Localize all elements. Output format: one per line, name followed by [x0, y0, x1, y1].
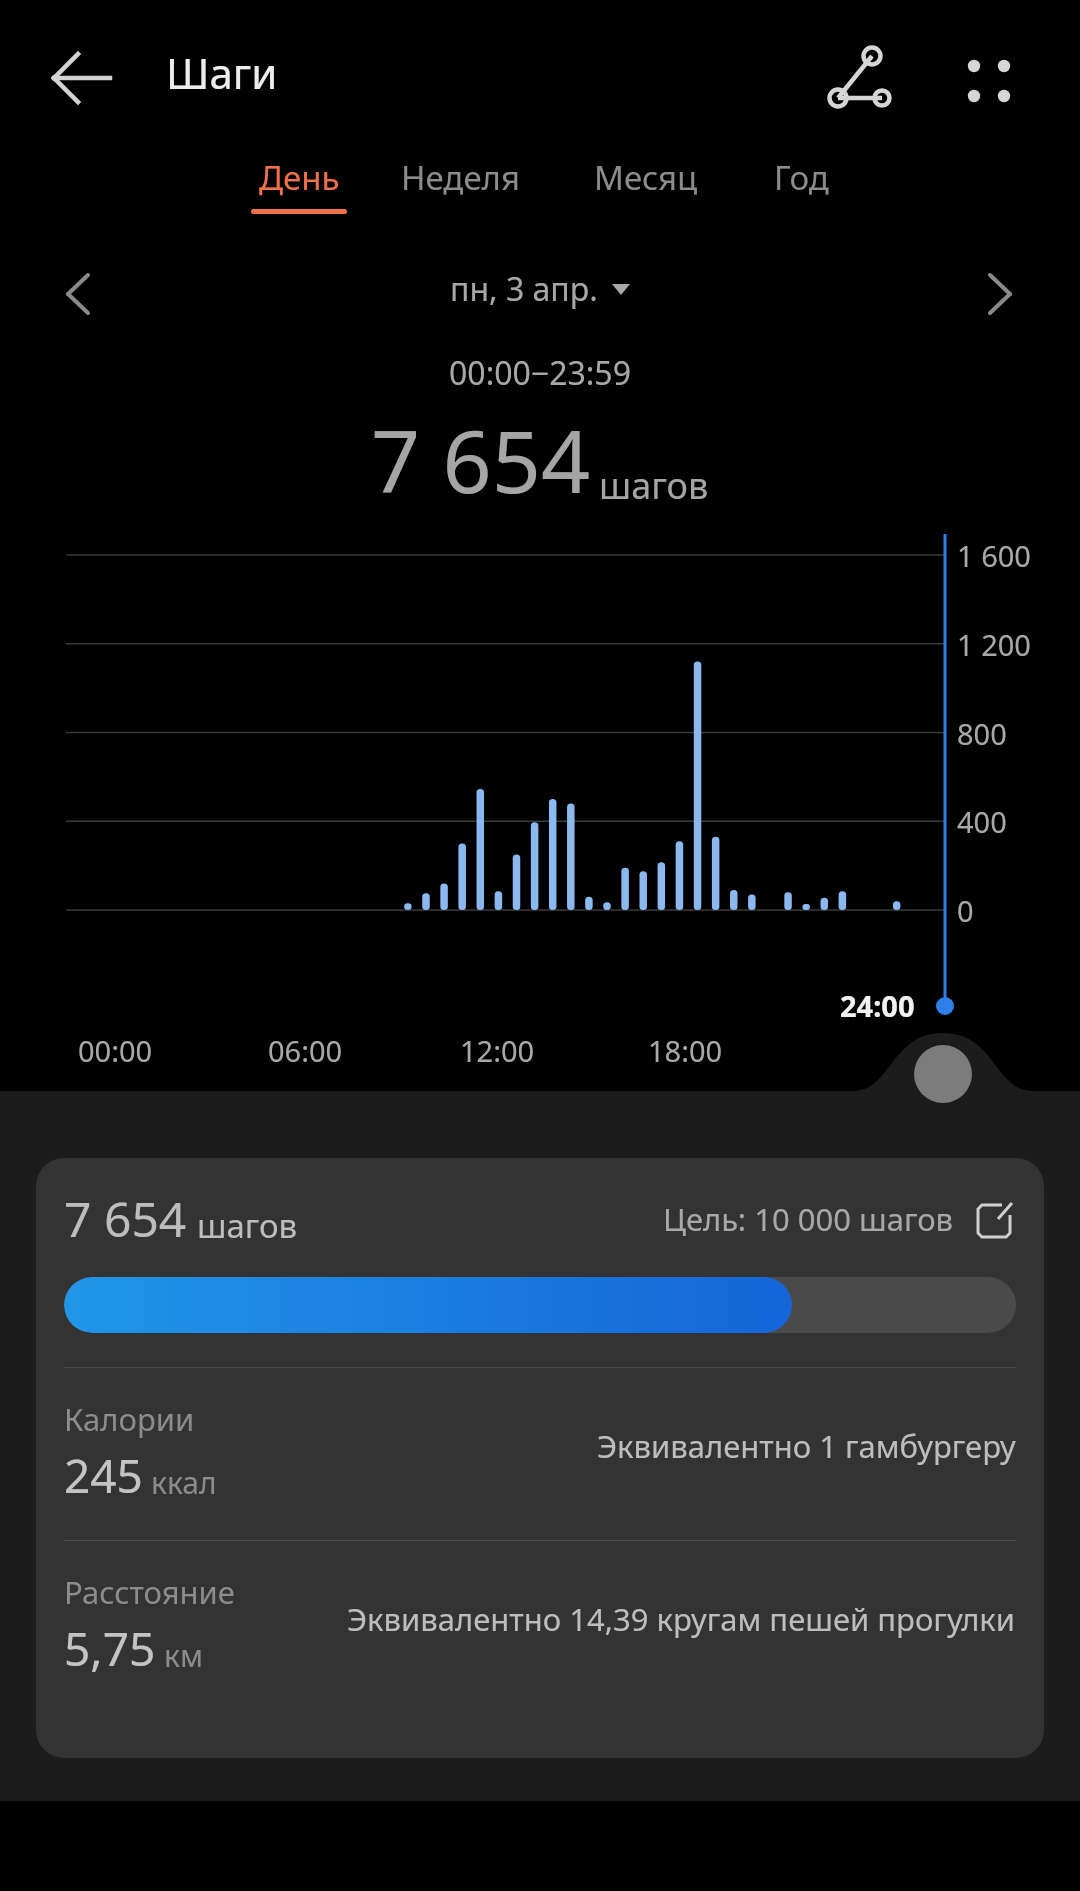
- staticText: Год: [774, 155, 829, 200]
- staticText: 0: [957, 891, 974, 930]
- button[interactable]: День: [251, 155, 347, 214]
- button[interactable]: Back: [48, 42, 120, 114]
- staticText: 800: [957, 714, 1007, 753]
- staticText: 1 600: [957, 536, 1031, 575]
- staticText: 7 654: [64, 1186, 187, 1251]
- staticText: 400: [957, 802, 1007, 841]
- staticText: Шаги: [166, 44, 278, 101]
- staticText: 245: [64, 1444, 143, 1507]
- button[interactable]: Расстояние: [36, 1541, 1044, 1713]
- button[interactable]: пн, 3 апр.: [450, 267, 630, 311]
- button[interactable]: 7 654: [36, 1158, 1044, 1758]
- staticText: ккал: [151, 1462, 217, 1503]
- staticText: Месяц: [594, 155, 698, 200]
- staticText: шагов: [599, 461, 709, 510]
- staticText: Неделя: [401, 155, 520, 200]
- button[interactable]: Edit goal: [972, 1197, 1016, 1241]
- button[interactable]: Месяц: [594, 155, 698, 200]
- button[interactable]: Share: [818, 40, 894, 116]
- staticText: Калории: [64, 1398, 195, 1440]
- staticText: пн, 3 апр.: [450, 267, 598, 311]
- staticText: 06:00: [268, 1031, 343, 1070]
- staticText: 7 654: [371, 401, 591, 518]
- staticText: 00:00−23:59: [449, 351, 631, 395]
- button[interactable]: More options: [950, 40, 1026, 116]
- button[interactable]: Next day: [968, 263, 1030, 325]
- staticText: км: [164, 1635, 203, 1676]
- staticText: 12:00: [460, 1031, 535, 1070]
- staticText: Эквивалентно 14,39 кругам пешей прогулки: [347, 1598, 1016, 1640]
- staticText: 00:00: [78, 1031, 153, 1070]
- button[interactable]: Калории: [36, 1368, 1044, 1540]
- staticText: Расстояние: [64, 1571, 235, 1613]
- staticText: 24:00: [840, 986, 915, 1025]
- staticText: шагов: [197, 1203, 298, 1248]
- button[interactable]: Год: [774, 155, 829, 200]
- staticText: Цель: 10 000 шагов: [663, 1198, 954, 1240]
- staticText: 18:00: [648, 1031, 723, 1070]
- staticText: 1 200: [957, 625, 1031, 664]
- button[interactable]: Previous day: [50, 263, 112, 325]
- staticText: День: [259, 155, 340, 200]
- staticText: Эквивалентно 1 гамбургеру: [597, 1425, 1016, 1467]
- button[interactable]: Неделя: [401, 155, 520, 200]
- staticText: 5,75: [64, 1617, 156, 1680]
